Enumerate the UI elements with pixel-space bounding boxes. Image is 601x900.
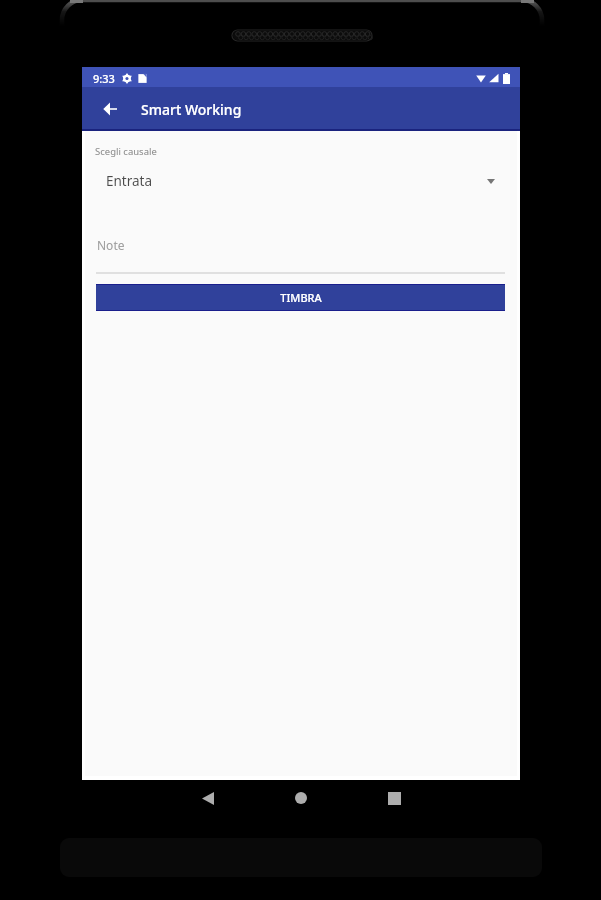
button[interactable]: Back bbox=[190, 780, 226, 816]
staticText: Smart Working bbox=[141, 100, 242, 119]
button[interactable]: Recent apps bbox=[376, 780, 412, 816]
button[interactable]: TIMBRA bbox=[96, 284, 505, 311]
button[interactable]: Back bbox=[88, 87, 132, 131]
staticText: 9:33 bbox=[93, 71, 115, 86]
staticText: Note bbox=[97, 237, 125, 253]
staticText: TIMBRA bbox=[280, 290, 322, 305]
button[interactable]: Entrata bbox=[96, 167, 495, 195]
staticText: Entrata bbox=[106, 172, 153, 190]
button[interactable]: Home bbox=[283, 780, 319, 816]
staticText: Scegli causale bbox=[95, 145, 157, 158]
